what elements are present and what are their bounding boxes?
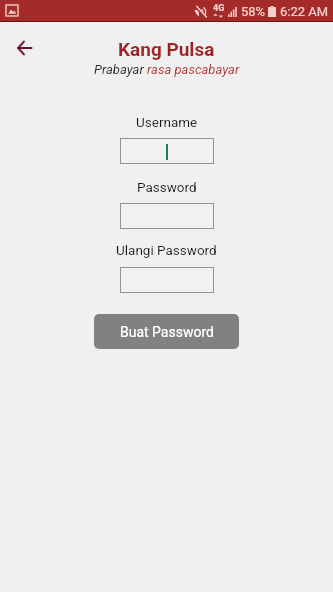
button[interactable]: Buat Password: [94, 314, 239, 349]
button[interactable]: [120, 267, 214, 293]
staticText: 58%: [241, 4, 266, 19]
staticText: 4G: [213, 3, 225, 14]
staticText: rasa pascabayar: [147, 62, 240, 77]
button[interactable]: [120, 138, 214, 164]
staticText: 6:22 AM: [280, 4, 329, 19]
staticText: Password: [137, 179, 197, 195]
other: Sound muted: [194, 6, 207, 18]
other: Screenshot notification: [6, 5, 18, 16]
button[interactable]: [120, 203, 214, 229]
button[interactable]: Back: [12, 36, 36, 60]
staticText: Kang Pulsa: [118, 38, 215, 60]
staticText: Ulangi Password: [116, 242, 217, 258]
staticText: Username: [136, 114, 198, 130]
staticText: Prabayar: [94, 62, 147, 77]
staticText: Buat Password: [120, 324, 214, 340]
